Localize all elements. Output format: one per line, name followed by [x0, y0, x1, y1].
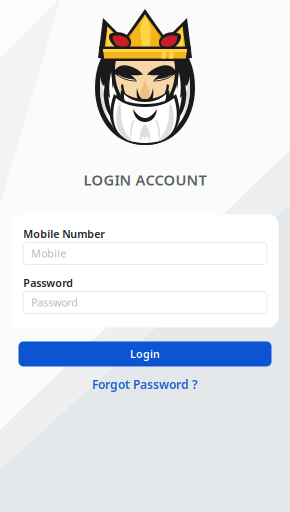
staticText: Password: [31, 295, 78, 310]
staticText: Login: [130, 347, 160, 361]
button[interactable]: Login: [18, 341, 271, 366]
staticText: LOGIN ACCOUNT: [83, 170, 206, 189]
staticText: Mobile Number: [23, 227, 105, 241]
staticText: Mobile: [31, 246, 66, 261]
staticText: Forgot Password ?: [92, 376, 198, 392]
staticText: Password: [23, 276, 73, 290]
button[interactable]: Forgot Password ?: [86, 373, 204, 395]
